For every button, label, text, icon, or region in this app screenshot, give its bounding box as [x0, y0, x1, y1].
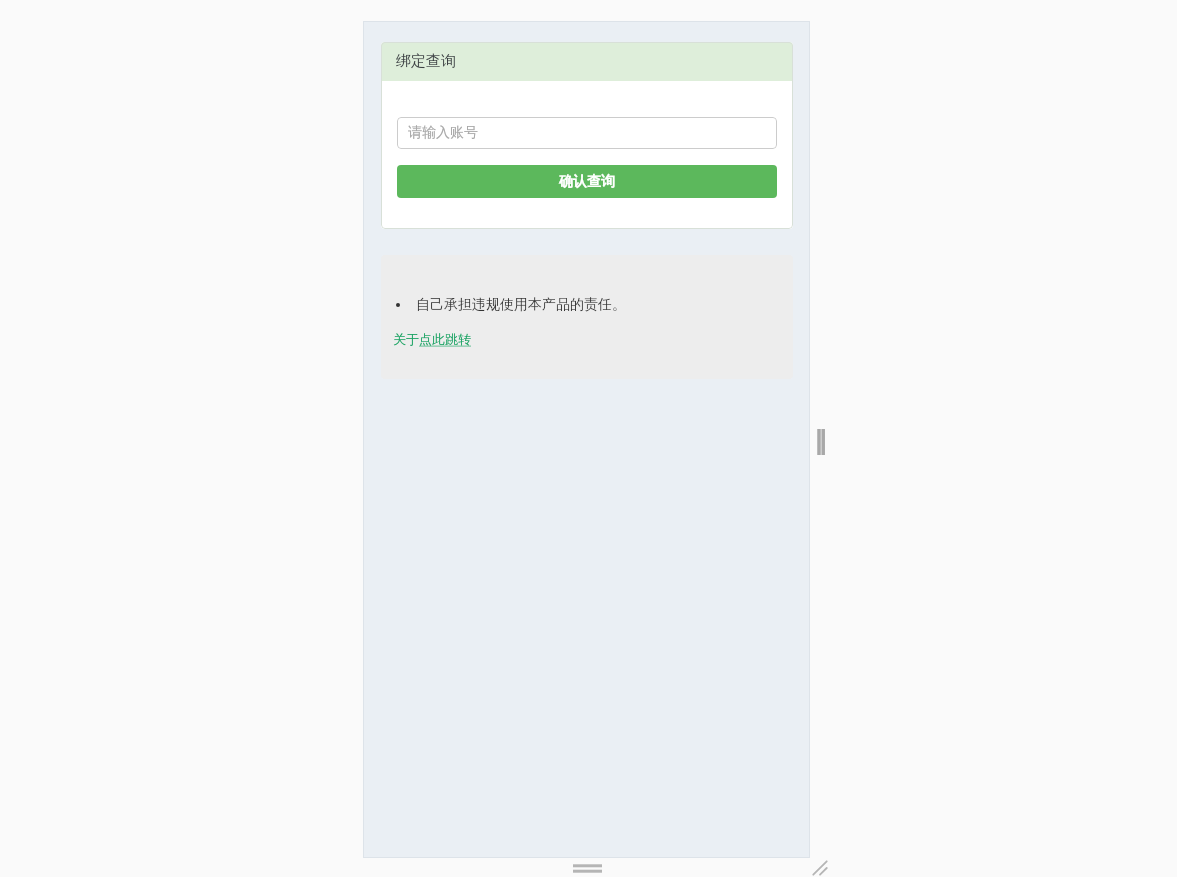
- staticText: 关于点此跳转: [393, 331, 471, 347]
- button[interactable]: 关于点此跳转: [393, 331, 471, 347]
- staticText: 请输入账号: [408, 124, 478, 142]
- button[interactable]: 确认查询: [397, 165, 777, 198]
- button[interactable]: Resize height: [555, 858, 619, 877]
- button[interactable]: Resize: [808, 856, 832, 877]
- staticText: 绑定查询: [396, 52, 456, 71]
- button[interactable]: 请输入账号: [397, 117, 777, 149]
- button[interactable]: Resize width: [810, 21, 832, 858]
- staticText: 自己承担违规使用本产品的责任。: [416, 296, 626, 314]
- staticText: 确认查询: [559, 173, 615, 191]
